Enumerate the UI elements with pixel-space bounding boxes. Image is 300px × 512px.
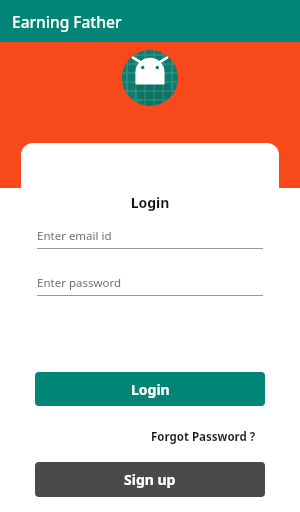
button[interactable]: Forgot Password ? <box>141 426 256 448</box>
staticText: Login <box>21 193 279 212</box>
staticText: Login <box>131 380 170 399</box>
other: App logo <box>122 50 178 106</box>
button[interactable]: Login <box>35 372 265 406</box>
staticText: Sign up <box>124 470 176 489</box>
button[interactable]: Sign up <box>35 462 265 497</box>
staticText: Forgot Password ? <box>151 429 256 445</box>
staticText: Enter password <box>37 275 122 291</box>
staticText: Enter email id <box>37 228 112 244</box>
button[interactable]: Enter email id <box>37 228 263 249</box>
button[interactable]: Enter password <box>37 275 263 296</box>
staticText: Earning Father <box>12 11 122 32</box>
